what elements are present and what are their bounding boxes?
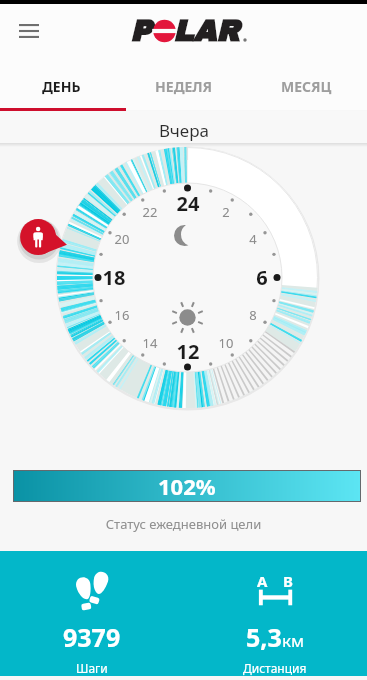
staticText: 24 — [172, 190, 204, 217]
staticText: Вчера — [159, 119, 209, 142]
staticText: ДЕНЬ — [42, 77, 81, 96]
staticText: P — [129, 16, 151, 46]
staticText: 22 — [134, 203, 166, 221]
staticText: 20 — [106, 230, 138, 248]
staticText: Статус ежедневной цели — [0, 515, 367, 533]
staticText: 12 — [172, 338, 204, 365]
staticText: 14 — [134, 334, 166, 352]
button[interactable]: Activity marker — [17, 215, 65, 263]
staticText: Шаги — [76, 660, 108, 676]
button[interactable]: 9379 — [0, 551, 183, 676]
staticText: НЕДЕЛЯ — [155, 77, 213, 96]
staticText: 10 — [210, 334, 242, 352]
staticText: 18 — [98, 264, 130, 291]
staticText: 5,3 — [246, 620, 282, 654]
staticText: 2 — [210, 203, 242, 221]
staticText: 4 — [237, 230, 269, 248]
staticText: 102% — [158, 471, 216, 501]
staticText: 8 — [237, 306, 269, 324]
staticText: B — [283, 571, 293, 591]
staticText: МЕСЯЦ — [281, 77, 332, 96]
button[interactable]: МЕСЯЦ — [245, 58, 367, 110]
button[interactable]: Daily activity clock — [57, 147, 318, 408]
button[interactable]: Вчера — [0, 111, 367, 143]
button[interactable]: ДЕНЬ — [0, 58, 123, 110]
staticText: A — [257, 571, 268, 591]
staticText: 6 — [246, 264, 278, 291]
staticText: LAR — [172, 16, 239, 46]
staticText: Дистанция — [243, 660, 307, 676]
button[interactable]: НЕДЕЛЯ — [123, 58, 245, 110]
button[interactable]: A — [183, 551, 367, 676]
staticText: 9379 — [63, 620, 121, 654]
staticText: 16 — [106, 306, 138, 324]
staticText: км — [282, 629, 305, 652]
button[interactable]: Menu — [9, 11, 49, 51]
button[interactable]: 102% — [14, 471, 360, 501]
